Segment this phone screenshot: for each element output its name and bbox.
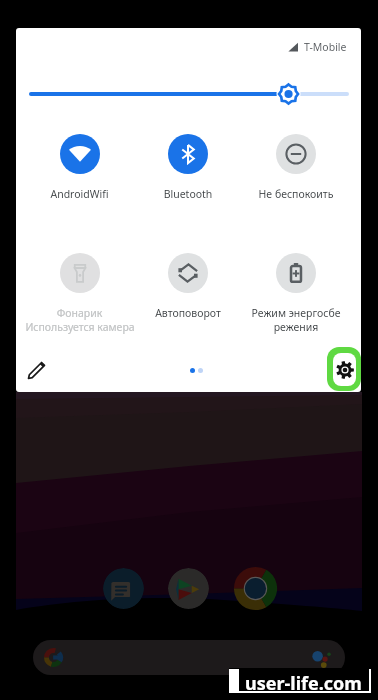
button[interactable]: Фонарик — [25, 253, 134, 334]
button[interactable]: Search — [33, 640, 345, 675]
button[interactable]: Автоповорот — [134, 253, 242, 320]
staticText: Bluetooth — [134, 187, 242, 201]
staticText: Не беспокоить — [242, 187, 350, 201]
button[interactable]: Messages — [103, 568, 144, 609]
staticText: Фонарик — [25, 306, 134, 320]
staticText: Используется камера — [25, 320, 134, 334]
button[interactable]: Chrome — [233, 566, 278, 611]
staticText: user-life.com — [245, 671, 362, 696]
button[interactable]: Edit — [19, 353, 53, 387]
button[interactable]: Не беспокоить — [242, 134, 350, 201]
button[interactable]: Режим энергосбе режения — [242, 253, 350, 334]
staticText: Автоповорот — [134, 306, 242, 320]
staticText: T-Mobile — [304, 40, 347, 54]
button[interactable]: AndroidWifi — [25, 134, 134, 201]
staticText: AndroidWifi — [25, 187, 134, 201]
button[interactable]: Bluetooth — [134, 134, 242, 201]
button[interactable]: Settings — [327, 347, 361, 391]
staticText: Режим энергосбе режения — [242, 306, 350, 334]
button[interactable]: Play Store — [168, 568, 209, 609]
